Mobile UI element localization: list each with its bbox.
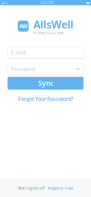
staticText: Password [11, 65, 35, 73]
staticText: AW [19, 23, 27, 30]
staticText: NO NEWS IS GOOD NEWS [33, 31, 63, 35]
staticText: E-mail [11, 49, 26, 56]
staticText: ✉ [5, 1, 7, 4]
staticText: ▮▮▮ [86, 1, 89, 4]
staticText: ▲ [2, 1, 4, 4]
staticText: Register now [48, 185, 73, 191]
button[interactable]: Forgot Your Password? [7, 95, 83, 102]
staticText: AllsWell [33, 17, 73, 31]
staticText: 3:40 PM [40, 1, 52, 4]
button[interactable]: Register now [48, 185, 73, 191]
button[interactable]: Sync [7, 77, 83, 90]
staticText: Forgot Your Password? [18, 95, 73, 102]
button[interactable]: Show password [75, 67, 80, 71]
staticText: Sync [38, 79, 53, 88]
staticText: Not registered? [18, 185, 45, 191]
